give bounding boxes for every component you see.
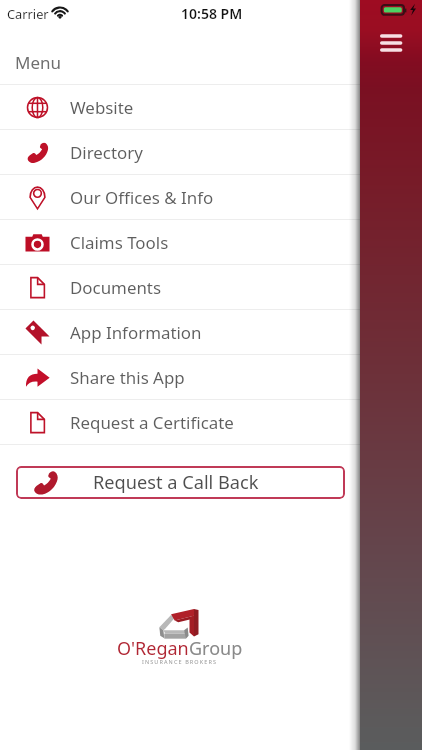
staticText: O'Regan bbox=[117, 636, 189, 661]
button[interactable]: Open menu bbox=[374, 28, 408, 58]
staticText: App Information bbox=[70, 321, 202, 344]
button[interactable]: Our Offices & Info bbox=[0, 175, 360, 219]
staticText: Carrier bbox=[7, 5, 49, 22]
staticText: Documents bbox=[70, 276, 162, 299]
button[interactable]: Documents bbox=[0, 265, 360, 309]
staticText: Directory bbox=[70, 141, 143, 164]
button[interactable]: Share this App bbox=[0, 355, 360, 399]
button[interactable]: Website bbox=[0, 85, 360, 129]
button[interactable]: Request a Call Back bbox=[16, 466, 345, 499]
staticText: Share this App bbox=[70, 366, 185, 389]
staticText: Request a Certificate bbox=[70, 411, 234, 434]
staticText: Website bbox=[70, 96, 134, 119]
staticText: 10:58 PM bbox=[181, 4, 243, 23]
staticText: INSURANCE BROKERS bbox=[142, 658, 218, 665]
staticText: Request a Call Back bbox=[93, 470, 259, 495]
button[interactable]: Directory bbox=[0, 130, 360, 174]
staticText: Our Offices & Info bbox=[70, 186, 214, 209]
staticText: Group bbox=[189, 636, 243, 661]
button[interactable]: App Information bbox=[0, 310, 360, 354]
button[interactable]: Request a Certificate bbox=[0, 400, 360, 444]
staticText: Menu bbox=[15, 51, 62, 74]
staticText: Claims Tools bbox=[70, 231, 169, 254]
button[interactable]: Claims Tools bbox=[0, 220, 360, 264]
